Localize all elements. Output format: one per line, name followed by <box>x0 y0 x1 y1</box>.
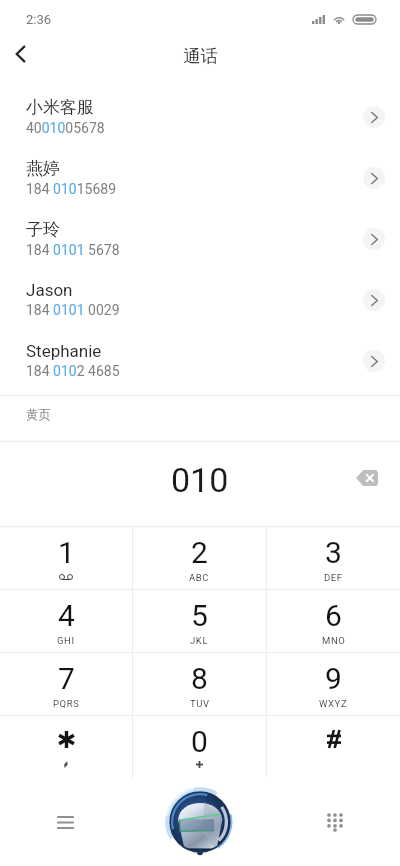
button[interactable]: Jason <box>0 269 400 330</box>
staticText: 通话 <box>183 45 218 67</box>
staticText: 184 0102 4685 <box>26 363 120 379</box>
button[interactable]: Stephanie <box>0 330 400 391</box>
button[interactable]: Call details <box>363 228 385 250</box>
staticText: 184 0101 5678 <box>26 242 120 258</box>
button[interactable]: Menu <box>45 802 85 842</box>
staticText: 8 <box>191 661 208 696</box>
staticText: 2:36 <box>26 12 52 27</box>
staticText: Jason <box>26 280 73 300</box>
staticText: 184 0101 0029 <box>26 302 120 318</box>
button[interactable]: 8 <box>133 653 266 715</box>
button[interactable]: Back <box>0 34 40 74</box>
staticText: 7 <box>58 661 75 696</box>
button[interactable]: Call <box>167 789 233 855</box>
staticText: 010 <box>171 460 229 500</box>
button[interactable]: 0 <box>133 716 266 778</box>
staticText: GHI <box>57 635 75 646</box>
staticText: WXYZ <box>319 698 348 709</box>
button[interactable]: 子玲 <box>0 208 400 269</box>
staticText: PQRS <box>53 698 80 709</box>
button[interactable] <box>0 716 132 778</box>
button[interactable] <box>267 716 400 778</box>
button[interactable]: 9 <box>267 653 400 715</box>
button[interactable]: Call details <box>363 167 385 189</box>
button[interactable]: 7 <box>0 653 132 715</box>
button[interactable]: Call details <box>363 289 385 311</box>
staticText: TUV <box>190 698 210 709</box>
staticText: 子玲 <box>26 219 60 240</box>
button[interactable]: 3 <box>267 527 400 589</box>
staticText: 燕婷 <box>26 158 60 179</box>
staticText: JKL <box>190 635 209 646</box>
button[interactable]: 黄页 <box>0 396 400 441</box>
staticText: 184 01015689 <box>26 181 117 197</box>
button[interactable]: Backspace <box>347 458 387 498</box>
staticText: Stephanie <box>26 341 102 361</box>
staticText: 6 <box>325 598 342 633</box>
button[interactable]: Dialpad <box>315 802 355 842</box>
staticText: 2 <box>191 535 208 570</box>
staticText: ABC <box>189 572 210 583</box>
staticText: 5 <box>191 598 208 633</box>
staticText: 4 <box>58 598 75 633</box>
staticText: 3 <box>325 535 342 570</box>
button[interactable]: Call details <box>363 106 385 128</box>
button[interactable]: 5 <box>133 590 266 652</box>
button[interactable]: 燕婷 <box>0 147 400 208</box>
staticText: 0 <box>191 724 208 759</box>
button[interactable]: 6 <box>267 590 400 652</box>
staticText: MNO <box>322 635 346 646</box>
button[interactable]: 小米客服 <box>0 86 400 147</box>
button[interactable]: 2 <box>133 527 266 589</box>
staticText: DEF <box>324 572 343 583</box>
staticText: 9 <box>325 661 342 696</box>
staticText: 小米客服 <box>26 97 94 118</box>
button[interactable]: 1 <box>0 527 132 589</box>
button[interactable]: 4 <box>0 590 132 652</box>
staticText: 1 <box>58 535 75 570</box>
button[interactable]: Call details <box>363 350 385 372</box>
staticText: 黄页 <box>26 407 51 423</box>
staticText: 4001005678 <box>26 120 105 136</box>
